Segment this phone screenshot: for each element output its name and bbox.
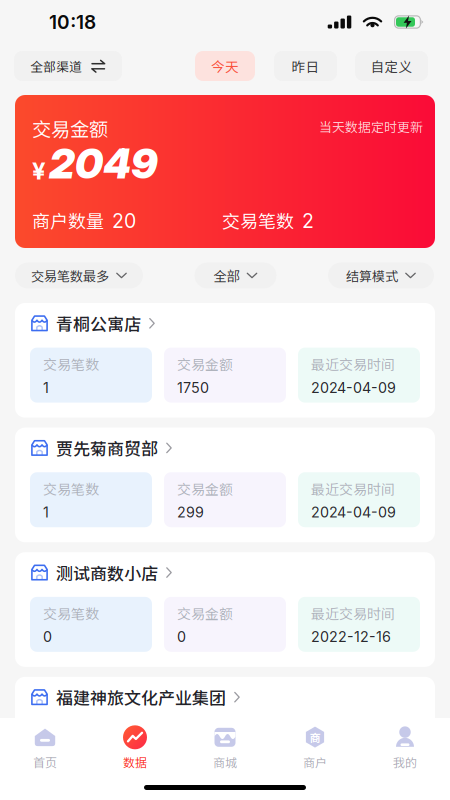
staticText: 2023-01-02 — [311, 753, 394, 770]
staticText: 299 — [177, 504, 204, 521]
staticText: 1 — [43, 379, 49, 396]
staticText: 全部 — [213, 266, 239, 285]
staticText: 商 — [309, 729, 320, 745]
button[interactable]: 测试商数小店 — [15, 552, 435, 667]
staticText: 交易笔数最多 — [31, 266, 109, 285]
staticText: 当天数据定时更新 — [319, 117, 423, 136]
staticText: 全部渠道 — [30, 57, 82, 75]
button[interactable]: 全部渠道 — [14, 51, 122, 81]
staticText: 福建神旅文化产业集团 — [56, 685, 226, 709]
staticText: 首页 — [33, 753, 57, 771]
button[interactable]: 首页 — [0, 722, 90, 774]
staticText: 1 — [43, 504, 49, 521]
staticText: 商户 — [303, 753, 327, 771]
staticText: 最近交易时间 — [311, 478, 395, 499]
staticText: 1750 — [177, 379, 209, 396]
staticText: 青桐公寓店 — [56, 311, 141, 336]
staticText: 今天 — [211, 56, 239, 76]
staticText: 商城 — [213, 753, 237, 771]
staticText: 交易笔数 — [43, 603, 99, 623]
button[interactable]: 我的 — [360, 722, 450, 774]
staticText: 最近交易时间 — [311, 354, 395, 374]
button[interactable]: 结算模式 — [328, 262, 434, 288]
staticText: 2049 — [49, 139, 157, 188]
staticText: 0 — [177, 628, 186, 646]
staticText: 交易笔数 — [43, 478, 99, 499]
staticText: ¥ — [32, 156, 46, 185]
button[interactable]: 数据 — [90, 722, 180, 774]
staticText: 数据 — [123, 753, 147, 771]
button[interactable]: 贾先菊商贸部 — [15, 428, 435, 542]
staticText: 10:18 — [49, 10, 96, 33]
staticText: 2024-04-09 — [311, 379, 396, 396]
staticText: 贾先菊商贸部 — [56, 436, 158, 460]
staticText: 交易笔数 — [43, 728, 99, 748]
staticText: 交易金额 — [177, 354, 233, 374]
staticText: 商户数量 — [32, 207, 104, 233]
staticText: 最近交易时间 — [311, 728, 395, 748]
staticText: 交易金额 — [177, 728, 233, 748]
button[interactable]: 全部 — [194, 262, 276, 288]
staticText: 结算模式 — [346, 266, 398, 285]
button[interactable]: 昨日 — [274, 51, 337, 81]
staticText: 交易金额 — [177, 478, 233, 499]
staticText: 最近交易时间 — [311, 603, 395, 623]
staticText: 交易金额 — [177, 603, 233, 623]
staticText: 2024-04-09 — [311, 504, 396, 521]
staticText: 我的 — [393, 753, 417, 771]
button[interactable]: 今天 — [195, 51, 255, 81]
button[interactable]: 商城 — [180, 722, 270, 774]
button[interactable]: 交易笔数最多 — [15, 262, 143, 288]
button[interactable]: 商 — [270, 722, 360, 774]
staticText: 交易笔数 — [222, 207, 294, 233]
staticText: 2 — [302, 209, 314, 233]
staticText: 3 — [43, 753, 52, 770]
staticText: 2022-12-16 — [311, 628, 391, 646]
button[interactable]: 福建神旅文化产业集团 — [15, 677, 435, 791]
staticText: 交易金额 — [32, 114, 108, 142]
staticText: 交易笔数 — [43, 354, 99, 374]
staticText: 昨日 — [291, 56, 319, 76]
staticText: 0 — [43, 628, 52, 646]
staticText: 测试商数小店 — [56, 560, 158, 585]
staticText: 自定义 — [370, 56, 412, 76]
button[interactable]: 青桐公寓店 — [15, 303, 435, 418]
staticText: 20 — [112, 209, 136, 233]
button[interactable]: 自定义 — [355, 51, 428, 81]
